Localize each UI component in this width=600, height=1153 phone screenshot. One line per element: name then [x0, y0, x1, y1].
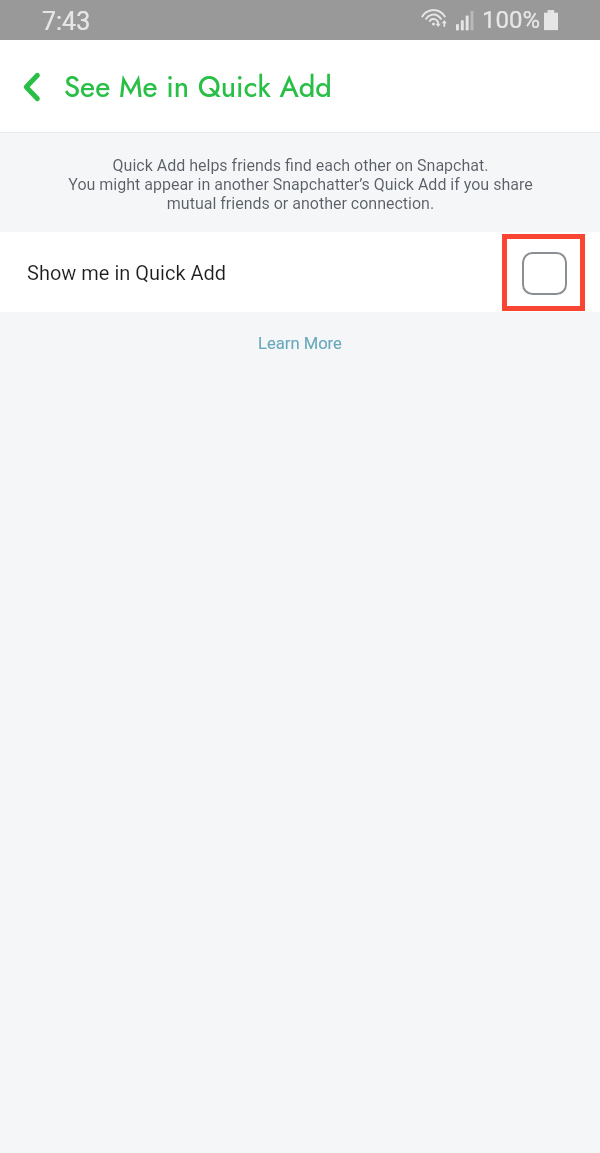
staticText: Show me in Quick Add — [27, 261, 227, 284]
button[interactable]: Learn More — [246, 326, 354, 361]
staticText: Quick Add helps friends find each other … — [68, 156, 533, 213]
button[interactable]: Show me in Quick Add checkbox — [518, 247, 570, 299]
staticText: See Me in Quick Add — [64, 66, 332, 107]
staticText: 7:43 — [42, 7, 91, 36]
staticText: Learn More — [258, 334, 342, 353]
button[interactable]: Back — [4, 59, 60, 115]
button[interactable]: Show me in Quick Add — [0, 232, 600, 312]
staticText: 100% — [482, 6, 541, 34]
